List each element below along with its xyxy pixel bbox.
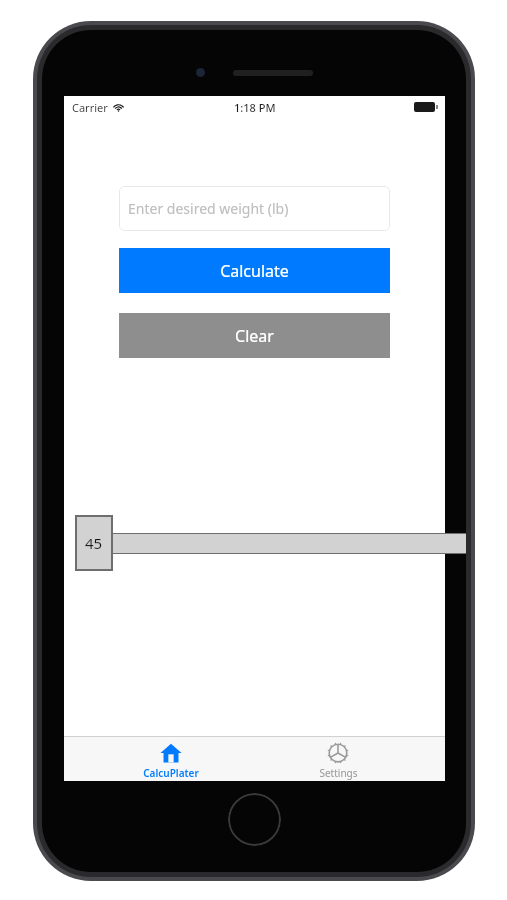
staticText: Enter desired weight (lb): [128, 199, 289, 218]
button[interactable]: Clear: [119, 313, 390, 358]
staticText: 45: [85, 533, 103, 553]
button[interactable]: Settings: [278, 739, 398, 780]
staticText: Carrier: [72, 100, 108, 115]
other: CalcuPlater: [160, 742, 182, 764]
staticText: Calculate: [220, 260, 289, 282]
staticText: CalcuPlater: [143, 766, 199, 780]
button[interactable]: Home: [228, 793, 281, 846]
staticText: 1:18 PM: [234, 100, 276, 115]
staticText: Settings: [319, 766, 358, 780]
button[interactable]: Calculate: [119, 248, 390, 293]
button[interactable]: CalcuPlater: [111, 739, 231, 780]
button[interactable]: Enter desired weight (lb): [119, 186, 390, 231]
other: Settings: [327, 742, 349, 764]
staticText: Clear: [235, 325, 274, 347]
